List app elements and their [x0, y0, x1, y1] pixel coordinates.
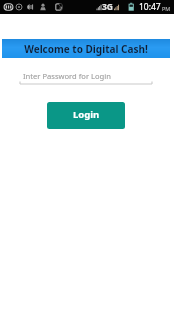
staticText: PM [162, 5, 171, 12]
staticText: Login [73, 108, 100, 121]
staticText: 10:47 [139, 1, 161, 13]
staticText: Welcome to Digital Cash! [24, 42, 148, 56]
button[interactable]: Inter Password for Login [0, 69, 174, 89]
staticText: 3G [102, 1, 114, 13]
button[interactable]: Login [47, 102, 125, 129]
staticText: Inter Password for Login [23, 71, 111, 81]
